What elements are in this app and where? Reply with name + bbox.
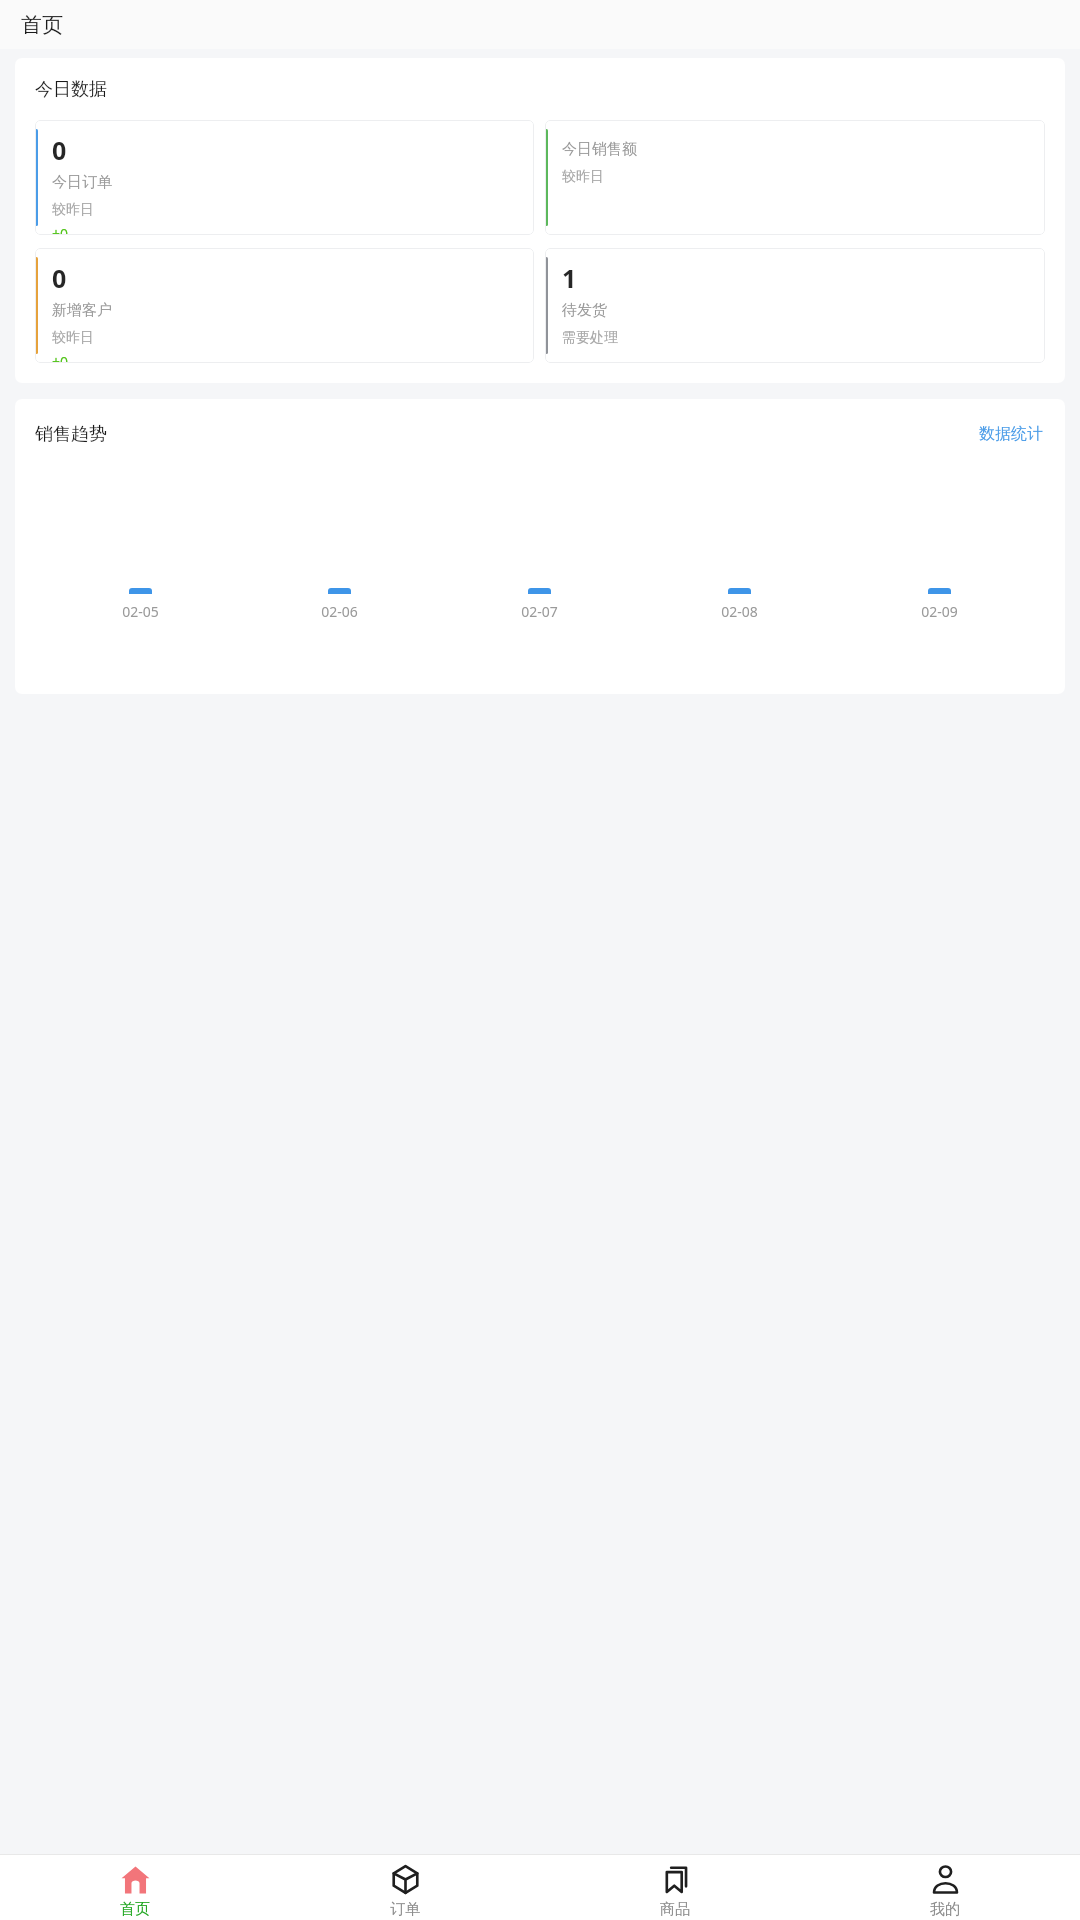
staticText: 1 [562,261,577,295]
other: 我的 [930,1864,961,1895]
staticText: 待发货 [562,301,607,320]
button[interactable]: 数据统计 [977,422,1045,446]
staticText: 我的 [930,1900,960,1919]
staticText: 较昨日 [52,329,94,347]
staticText: 02-09 [921,602,958,621]
staticText: 今日销售额 [562,140,637,159]
button[interactable]: 今日销售额 [545,120,1045,235]
staticText: 需要处理 [562,329,618,347]
button[interactable]: 1 [545,248,1045,363]
staticText: 02-08 [721,602,758,621]
button[interactable]: 0 [35,248,534,363]
staticText: 首页 [21,12,63,38]
staticText: 首页 [120,1900,150,1919]
staticText: 02-06 [321,602,358,621]
staticText: 02-05 [122,602,159,621]
staticText: 销售趋势 [35,423,107,446]
staticText: 今日数据 [35,78,107,101]
other: 首页 [120,1864,151,1895]
button[interactable]: 首页 [0,1854,270,1920]
staticText: 较昨日 [52,201,94,219]
staticText: +0 [52,224,69,235]
staticText: +0 [52,352,69,363]
button[interactable]: 订单 [270,1854,540,1920]
button[interactable]: 0 [35,120,534,235]
other: 订单 [390,1864,421,1895]
staticText: 数据统计 [979,424,1043,444]
staticText: 新增客户 [52,301,112,320]
button[interactable]: 商品 [540,1854,810,1920]
staticText: 0 [52,133,67,167]
staticText: 今日订单 [52,173,112,192]
staticText: 较昨日 [562,168,604,186]
staticText: 商品 [660,1900,690,1919]
staticText: 订单 [390,1900,420,1919]
staticText: 0 [52,261,67,295]
button[interactable]: 我的 [810,1854,1080,1920]
other: 商品 [660,1864,691,1895]
staticText: 02-07 [521,602,558,621]
